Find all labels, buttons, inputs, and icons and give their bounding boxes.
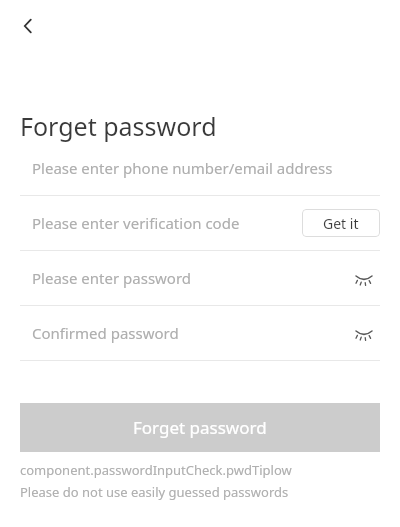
staticText: Forget password — [133, 416, 267, 439]
button[interactable]: Please enter phone number/email address — [0, 141, 400, 195]
staticText: Please enter verification code — [32, 213, 240, 233]
staticText: Get it — [323, 214, 359, 233]
button[interactable]: Confirmed password — [0, 306, 400, 360]
button[interactable]: Toggle password visibility — [348, 262, 380, 294]
button[interactable]: Back — [8, 6, 48, 46]
staticText: Forget password — [20, 109, 217, 143]
button[interactable]: Please enter verification code — [0, 196, 400, 250]
staticText: component.passwordInputCheck.pwdTiplow — [20, 461, 292, 479]
staticText: Please do not use easily guessed passwor… — [20, 483, 289, 501]
button[interactable]: Forget password — [20, 403, 380, 452]
button[interactable]: Get it — [302, 209, 380, 237]
button[interactable]: Toggle password visibility — [348, 317, 380, 349]
staticText: Please enter phone number/email address — [32, 158, 333, 178]
staticText: Please enter password — [32, 268, 192, 288]
staticText: Confirmed password — [32, 323, 179, 343]
button[interactable]: Please enter password — [0, 251, 400, 305]
